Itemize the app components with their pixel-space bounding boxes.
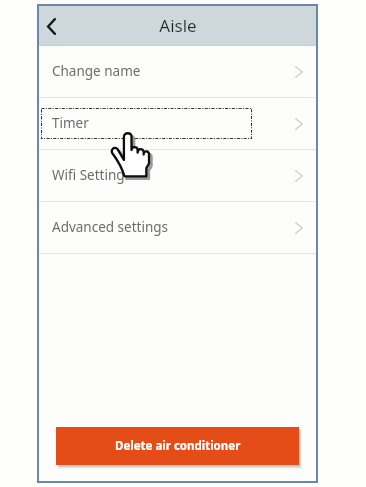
button[interactable]: Advanced settings	[39, 202, 316, 253]
button[interactable]: Delete air conditioner	[56, 427, 299, 465]
button[interactable]: Back	[39, 11, 69, 41]
staticText: Wifi Settings	[52, 166, 132, 184]
staticText: Change name	[52, 62, 141, 80]
button[interactable]: Timer	[39, 98, 316, 149]
staticText: Aisle	[159, 14, 197, 37]
staticText: Delete air conditioner	[115, 438, 241, 454]
button[interactable]: Change name	[39, 46, 316, 97]
button[interactable]: Wifi Settings	[39, 150, 316, 201]
staticText: Advanced settings	[52, 218, 169, 236]
staticText: Timer	[52, 114, 89, 132]
